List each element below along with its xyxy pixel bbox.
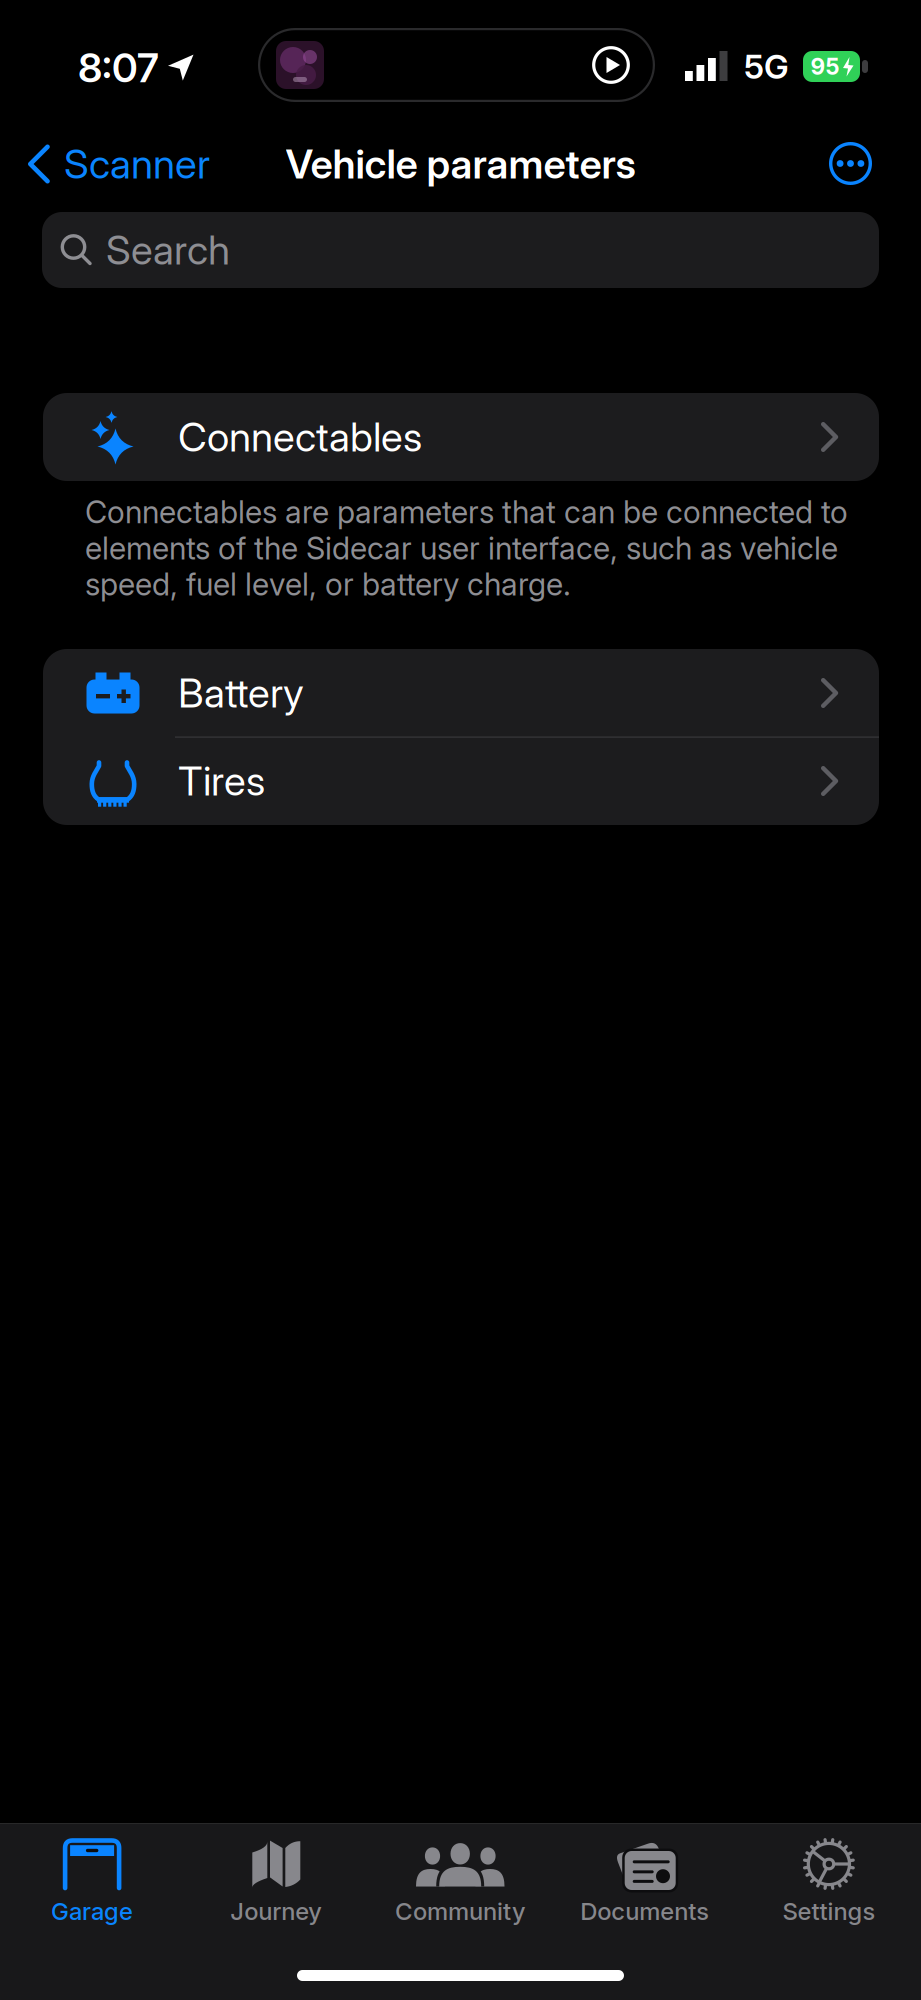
button[interactable]: Journey <box>184 1837 368 1933</box>
staticText: 95 <box>810 53 839 80</box>
button[interactable]: Play <box>592 46 630 84</box>
button[interactable]: Documents <box>553 1837 737 1933</box>
staticText: Garage <box>51 1897 133 1925</box>
button[interactable]: Settings <box>737 1837 921 1933</box>
button[interactable]: Community <box>368 1837 553 1933</box>
button[interactable]: Battery <box>43 649 879 737</box>
staticText: Connectables <box>178 413 422 461</box>
staticText: Scanner <box>64 140 210 188</box>
staticText: Documents <box>580 1897 709 1925</box>
staticText: Tires <box>178 757 265 805</box>
staticText: Vehicle parameters <box>285 140 635 188</box>
staticText: Connectables are parameters that can be … <box>85 494 848 602</box>
button[interactable]: Back <box>28 122 210 206</box>
staticText: Battery <box>178 669 304 717</box>
button[interactable]: Search <box>42 212 879 288</box>
button[interactable]: More <box>829 142 872 185</box>
staticText: Community <box>395 1897 526 1925</box>
button[interactable]: Tires <box>43 737 879 825</box>
button[interactable]: Connectables <box>43 393 879 481</box>
staticText: Search <box>106 226 230 274</box>
staticText: Journey <box>230 1897 322 1925</box>
staticText: 5G <box>744 47 789 86</box>
staticText: Settings <box>782 1897 875 1925</box>
staticText: 8:07 <box>78 44 159 91</box>
button[interactable]: Garage <box>0 1837 184 1933</box>
